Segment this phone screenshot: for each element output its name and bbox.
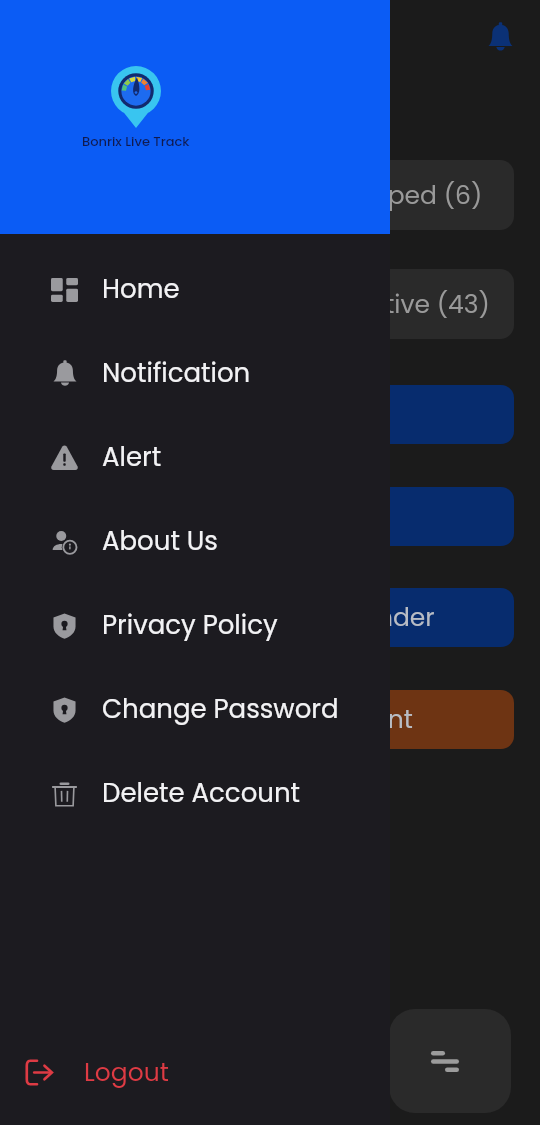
button[interactable]: Notifications — [476, 13, 524, 61]
button[interactable]: Payment — [286, 690, 514, 749]
staticText: Delete Account — [102, 775, 301, 811]
button[interactable]: Stopped (6) — [286, 160, 514, 230]
button[interactable] — [286, 385, 514, 444]
button[interactable] — [286, 487, 514, 546]
button[interactable]: Add Reminder — [286, 588, 514, 647]
staticText: Bonrix Live Track — [82, 132, 190, 150]
staticText: Change Password — [102, 691, 339, 727]
staticText: About Us — [102, 523, 218, 559]
staticText: Payment — [301, 702, 413, 737]
staticText: Stopped (6) — [331, 178, 483, 213]
staticText: Privacy Policy — [102, 607, 278, 643]
staticText: Notification — [102, 355, 251, 391]
staticText: Logout — [84, 1055, 169, 1090]
button[interactable]: Alert — [0, 415, 390, 499]
button[interactable]: Delete Account — [0, 751, 390, 835]
button[interactable]: Privacy Policy — [0, 583, 390, 667]
staticText: Add Reminder — [286, 600, 435, 635]
button[interactable]: About Us — [0, 499, 390, 583]
button[interactable]: Filter — [389, 1009, 511, 1113]
staticText: Inactive (43) — [331, 287, 490, 322]
button[interactable]: Change Password — [0, 667, 390, 751]
staticText: Alert — [102, 439, 162, 475]
button[interactable]: Notification — [0, 331, 390, 415]
staticText: Home — [102, 271, 180, 307]
button[interactable]: Logout — [0, 1032, 390, 1112]
button[interactable]: Home — [0, 247, 390, 331]
button[interactable]: Inactive (43) — [286, 269, 514, 339]
